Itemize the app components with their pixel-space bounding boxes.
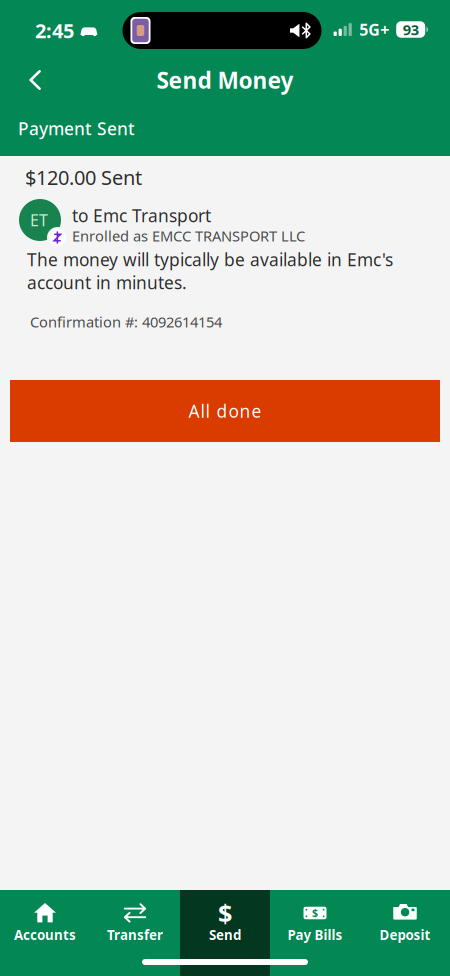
staticText: Accounts (14, 926, 76, 944)
staticText: Confirmation #: 4092614154 (30, 312, 222, 331)
staticText: The money will typically be available in… (27, 248, 393, 294)
staticText: 93 (403, 20, 419, 39)
staticText: 2:45 (35, 17, 74, 44)
staticText: ET (30, 209, 48, 231)
staticText: $ (218, 896, 232, 930)
button[interactable]: Accounts (0, 890, 90, 976)
button[interactable]: $ (270, 890, 360, 976)
staticText: Pay Bills (287, 926, 342, 944)
staticText: Send Money (156, 65, 293, 95)
staticText: Transfer (107, 926, 163, 944)
staticText: $ (312, 905, 318, 920)
staticText: to Emc Transport (72, 204, 211, 227)
staticText: Deposit (379, 926, 430, 944)
staticText: Send (209, 926, 241, 944)
button[interactable]: Deposit (360, 890, 450, 976)
staticText: Enrolled as EMCC TRANSPORT LLC (72, 226, 305, 245)
staticText: 5G+ (359, 19, 389, 40)
button[interactable]: $ (180, 890, 270, 976)
staticText: $120.00 Sent (25, 164, 142, 191)
button[interactable]: Transfer (90, 890, 180, 976)
button[interactable]: Back (13, 61, 57, 99)
button[interactable]: All done (10, 380, 440, 442)
staticText: All done (188, 399, 261, 422)
staticText: Payment Sent (18, 117, 135, 140)
